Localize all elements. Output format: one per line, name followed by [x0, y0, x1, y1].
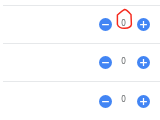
staticText: 0	[121, 93, 126, 104]
button[interactable]: Increase quantity	[137, 56, 150, 69]
button[interactable]: Decrease quantity	[99, 18, 112, 31]
button[interactable]: Increase quantity	[137, 95, 150, 108]
button[interactable]: Decrease quantity	[0, 43, 160, 81]
button[interactable]: Decrease quantity	[99, 56, 112, 69]
button[interactable]: Increase quantity	[137, 18, 150, 31]
button[interactable]: Decrease quantity	[99, 95, 112, 108]
staticText: 0	[121, 55, 126, 66]
button[interactable]: Decrease quantity	[0, 81, 160, 120]
button[interactable]: Decrease quantity	[0, 5, 160, 43]
staticText: 0	[121, 17, 126, 28]
